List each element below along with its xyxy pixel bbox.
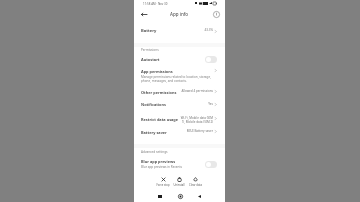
button[interactable]: Help [211, 9, 222, 20]
button[interactable]: Uninstall [171, 177, 187, 187]
button[interactable]: Recents [155, 191, 165, 201]
staticText: Autostart [141, 57, 160, 62]
staticText: 43.3% [204, 28, 213, 32]
button[interactable]: Force stop [155, 177, 171, 187]
staticText: Blur app previews [141, 159, 176, 164]
button[interactable]: Clear data [187, 177, 203, 187]
button[interactable]: Restrict data usage [134, 114, 225, 124]
staticText: App permissions [141, 69, 173, 74]
button[interactable]: Other permissions [134, 87, 225, 97]
staticText: Restrict data usage [141, 117, 179, 122]
staticText: Permissions [141, 48, 159, 52]
staticText: Advanced settings [141, 150, 168, 154]
button[interactable]: App permissions [134, 66, 225, 76]
button[interactable]: Toggle [205, 56, 217, 63]
button[interactable]: Battery [134, 26, 225, 36]
button[interactable]: Notifications [134, 99, 225, 109]
staticText: Notifications [141, 102, 166, 107]
staticText: Blur app previews in Recents [141, 165, 183, 169]
staticText: 11:58 AM · Nov 30 [143, 2, 168, 6]
staticText: Battery [141, 28, 157, 34]
button[interactable]: Battery saver [134, 127, 225, 137]
staticText: MIUI Battery saver [186, 129, 213, 133]
staticText: Allowed 4 permissions [181, 89, 213, 93]
staticText: Force stop [156, 183, 170, 187]
staticText: Manage permissions related to location, … [141, 75, 211, 83]
button[interactable]: Blur app previews [134, 156, 225, 166]
staticText: Yes [208, 102, 213, 106]
staticText: Clear data [189, 183, 202, 187]
button[interactable]: Home [175, 191, 185, 201]
staticText: Battery saver [141, 130, 167, 135]
button[interactable]: Toggle [205, 161, 217, 168]
button[interactable]: Back [138, 9, 149, 20]
staticText: Wi-Fi, Mobile data (SIM 1), Mobile data … [180, 116, 213, 124]
staticText: Other permissions [141, 90, 177, 95]
button[interactable]: Back [194, 191, 204, 201]
staticText: App info [170, 11, 189, 17]
button[interactable]: Autostart [134, 54, 225, 64]
staticText: Uninstall [173, 183, 185, 187]
